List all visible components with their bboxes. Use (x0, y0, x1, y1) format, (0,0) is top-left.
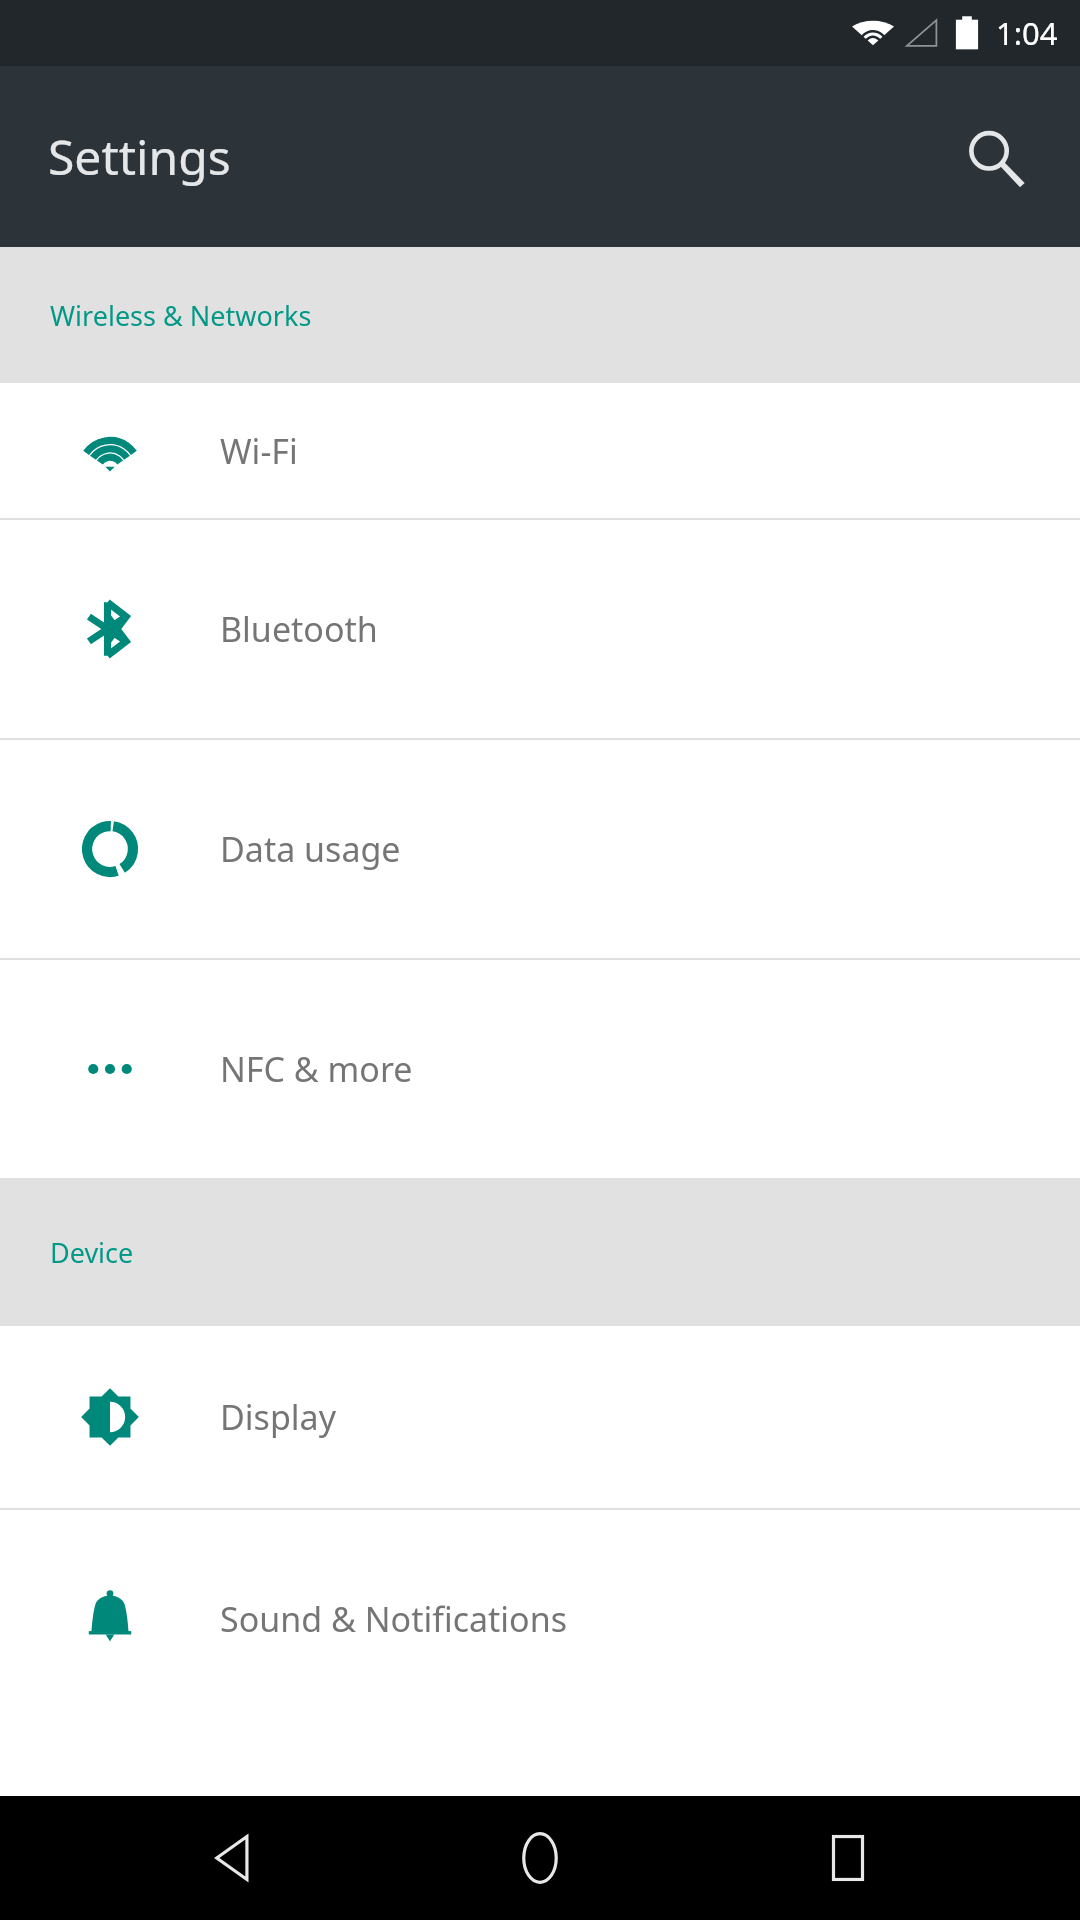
staticText: Display (220, 1394, 336, 1440)
staticText: Settings (48, 124, 231, 189)
button[interactable]: Back (158, 1796, 308, 1920)
staticText: Wi-Fi (220, 428, 298, 474)
button[interactable]: Display (0, 1326, 1080, 1508)
staticText: NFC & more (220, 1046, 413, 1092)
staticText: Wireless & Networks (50, 297, 312, 334)
button[interactable]: Wi-Fi (0, 383, 1080, 518)
staticText: Sound & Notifications (220, 1596, 567, 1642)
staticText: 1:04 (996, 12, 1058, 54)
button[interactable]: Search (946, 109, 1042, 205)
button[interactable]: NFC & more (0, 960, 1080, 1178)
button[interactable]: Recent apps (773, 1796, 923, 1920)
button[interactable]: Data usage (0, 740, 1080, 958)
staticText: Device (50, 1234, 134, 1271)
staticText: Data usage (220, 826, 401, 872)
button[interactable]: Sound & Notifications (0, 1510, 1080, 1728)
button[interactable]: Bluetooth (0, 520, 1080, 738)
staticText: Bluetooth (220, 606, 378, 652)
button[interactable]: Home (465, 1796, 615, 1920)
